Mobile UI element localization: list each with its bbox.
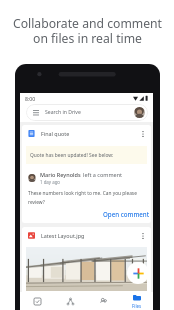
button[interactable]: Shared bbox=[54, 292, 87, 310]
staticText: Files bbox=[132, 303, 142, 309]
staticText: Latest Layout.jpg bbox=[41, 232, 85, 239]
button[interactable]: Home bbox=[20, 292, 54, 310]
button[interactable]: Search in Drive bbox=[26, 104, 148, 121]
button[interactable]: Create new bbox=[127, 262, 149, 284]
staticText: 1 day ago bbox=[40, 179, 61, 185]
button[interactable]: Files bbox=[120, 292, 153, 310]
button[interactable]: Starred bbox=[87, 292, 120, 310]
button[interactable]: More options bbox=[139, 130, 147, 138]
staticText: Final quote bbox=[41, 130, 70, 137]
staticText: Mario Reynolds bbox=[40, 171, 83, 178]
button[interactable]: Open comment bbox=[100, 208, 151, 220]
staticText: 8:00 bbox=[25, 95, 36, 102]
staticText: Open comment bbox=[103, 210, 150, 218]
staticText: Quote has been updated! See below: bbox=[30, 152, 114, 159]
staticText: left a comment bbox=[83, 171, 123, 178]
staticText: Search in Drive bbox=[45, 109, 81, 116]
button[interactable]: More options bbox=[139, 232, 147, 240]
staticText: These numbers look right to me. Can you … bbox=[28, 190, 140, 205]
staticText: Collaborate and comment on files in real… bbox=[13, 15, 162, 47]
